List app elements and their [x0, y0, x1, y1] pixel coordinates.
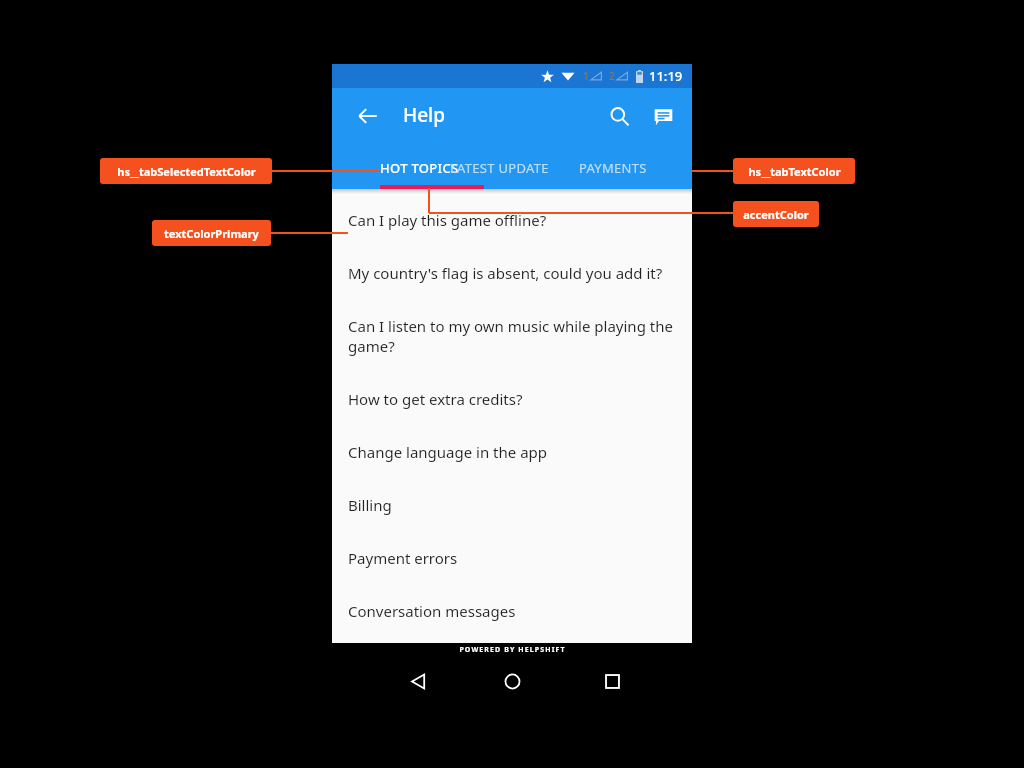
button[interactable]: HOT TOPICS — [380, 144, 484, 189]
staticText: Conversation messages — [348, 601, 516, 621]
button[interactable]: PAYMENTS — [579, 144, 679, 189]
staticText: Can I listen to my own music while playi… — [348, 316, 673, 356]
button[interactable]: Can I play this game offline? — [332, 200, 692, 240]
staticText: Payment errors — [348, 548, 458, 568]
staticText: Change language in the app — [348, 442, 548, 462]
button[interactable]: Payment errors — [332, 538, 692, 578]
staticText: POWERED BY HELPSHIFT — [459, 645, 566, 655]
button[interactable]: Change language in the app — [332, 432, 692, 472]
button[interactable]: Recents — [588, 657, 636, 705]
staticText: Help — [403, 102, 446, 128]
staticText: LATEST UPDATE — [450, 159, 549, 177]
staticText: hs__tabSelectedTextColor — [117, 164, 256, 179]
button[interactable]: My country's flag is absent, could you a… — [332, 253, 692, 293]
staticText: Billing — [348, 495, 392, 515]
button[interactable]: How to get extra credits? — [332, 379, 692, 419]
button[interactable]: Billing — [332, 485, 692, 525]
staticText: PAYMENTS — [579, 159, 647, 177]
staticText: accentColor — [743, 207, 809, 222]
staticText: 11:19 — [649, 67, 683, 85]
button[interactable]: Back — [394, 657, 442, 705]
button[interactable]: Back — [344, 92, 392, 140]
staticText: How to get extra credits? — [348, 389, 523, 409]
button[interactable]: Messages — [639, 92, 687, 140]
button[interactable]: Conversation messages — [332, 591, 692, 631]
staticText: 1 — [583, 69, 589, 83]
button[interactable]: Can I listen to my own music while playi… — [332, 306, 692, 366]
button[interactable]: LATEST UPDATE — [450, 144, 579, 189]
staticText: hs__tabTextColor — [748, 164, 841, 179]
button[interactable]: Search — [595, 92, 643, 140]
staticText: HOT TOPICS — [380, 159, 459, 177]
staticText: Can I play this game offline? — [348, 210, 547, 230]
staticText: textColorPrimary — [164, 226, 259, 241]
staticText: 2 — [609, 69, 615, 83]
button[interactable]: Home — [488, 657, 536, 705]
staticText: My country's flag is absent, could you a… — [348, 263, 663, 283]
